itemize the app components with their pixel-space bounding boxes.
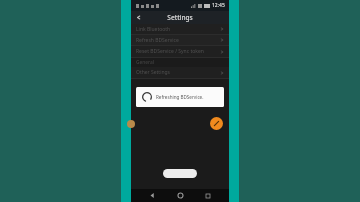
staticText: 12:45 — [212, 2, 225, 9]
staticText: Refresh BDService — [136, 37, 220, 44]
staticText: Refreshing BDService. Please wait... — [156, 94, 218, 100]
button[interactable]: Other Settings — [131, 67, 229, 78]
button[interactable]: Back — [147, 190, 158, 201]
button[interactable]: Link Bluetooth — [131, 24, 229, 34]
staticText: Link Bluetooth — [136, 26, 220, 33]
button[interactable]: Recent apps — [202, 190, 213, 201]
button[interactable]: Refreshing BDService. Please wait... — [136, 87, 224, 107]
staticText: Settings — [167, 13, 193, 22]
button[interactable]: Home — [175, 190, 186, 201]
staticText: Other Settings — [136, 69, 220, 76]
button[interactable]: Reset BDService / Sync token — [131, 46, 229, 57]
staticText: General — [136, 59, 154, 66]
button[interactable]: Back — [134, 13, 143, 22]
button[interactable]: Refresh BDService — [131, 35, 229, 45]
button[interactable] — [163, 169, 197, 178]
staticText: Reset BDService / Sync token — [136, 48, 220, 55]
button[interactable]: Edit — [210, 117, 223, 130]
